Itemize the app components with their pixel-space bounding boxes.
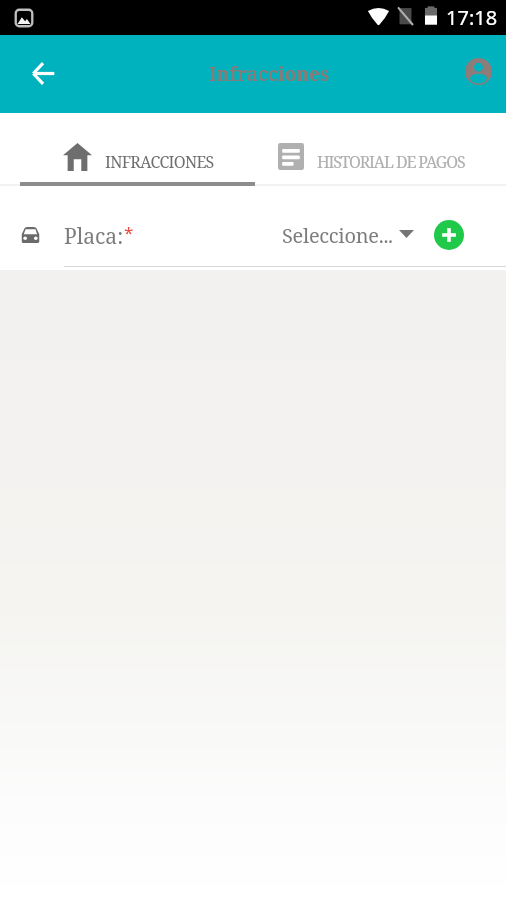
button[interactable]: Add	[434, 220, 464, 250]
staticText: Seleccione...	[282, 222, 393, 249]
staticText: Placa:	[64, 222, 124, 251]
staticText: HISTORIAL DE PAGOS	[317, 151, 465, 173]
staticText: Infracciones	[209, 61, 330, 87]
staticText: *	[124, 221, 134, 244]
button[interactable]	[265, 113, 490, 186]
staticText: INFRACCIONES	[105, 151, 214, 173]
button[interactable]: Seleccione...	[282, 216, 414, 244]
button[interactable]: Back	[21, 51, 65, 95]
staticText: 17:18	[446, 4, 498, 31]
button[interactable]: Account	[457, 50, 500, 93]
button[interactable]	[20, 113, 255, 186]
